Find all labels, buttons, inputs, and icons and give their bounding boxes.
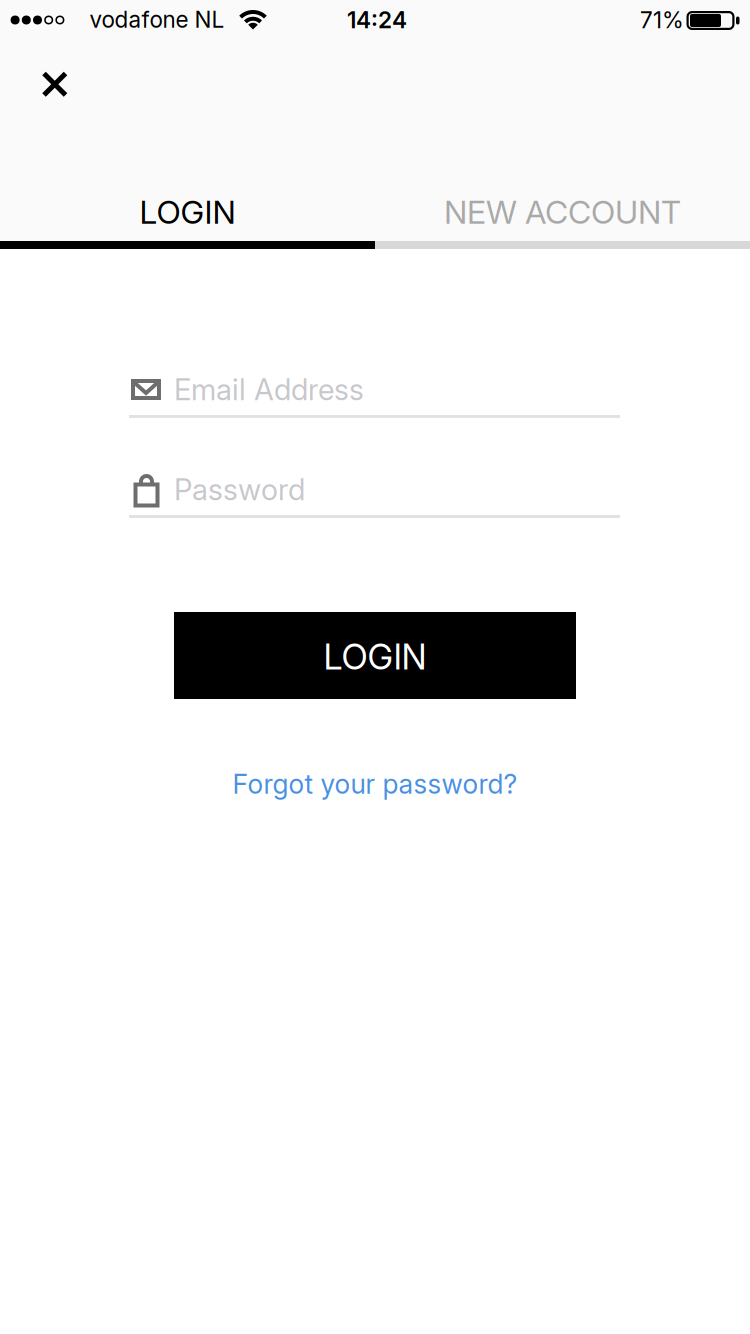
staticText: 14:24 bbox=[347, 7, 407, 33]
staticText: Forgot your password? bbox=[232, 768, 517, 800]
staticText: LOGIN bbox=[139, 193, 235, 231]
staticText: 71% bbox=[640, 7, 684, 33]
button[interactable]: Close bbox=[34, 64, 74, 104]
staticText: LOGIN bbox=[323, 637, 426, 677]
staticText: vodafone NL bbox=[89, 6, 224, 33]
staticText: Password bbox=[174, 472, 305, 507]
button[interactable]: NEW ACCOUNT bbox=[375, 177, 750, 247]
staticText: Email Address bbox=[174, 372, 364, 407]
button[interactable]: Forgot your password? bbox=[232, 768, 517, 800]
button[interactable]: LOGIN bbox=[0, 177, 375, 247]
button[interactable]: LOGIN bbox=[174, 612, 576, 699]
staticText: NEW ACCOUNT bbox=[444, 193, 681, 231]
